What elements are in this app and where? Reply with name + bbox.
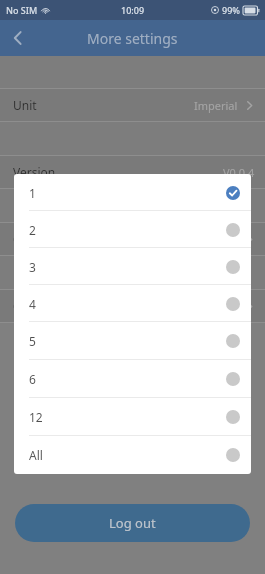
staticText: Clear cache xyxy=(13,231,78,247)
staticText: Check update xyxy=(13,298,91,314)
staticText: Log out xyxy=(109,514,156,532)
button[interactable]: Back xyxy=(0,20,36,56)
staticText: 12 xyxy=(29,409,43,425)
staticText: 99% xyxy=(222,4,240,16)
staticText: V0.0.4 xyxy=(223,165,255,180)
button[interactable]: 1 xyxy=(14,174,251,211)
staticText: All xyxy=(29,447,43,463)
staticText: 3 xyxy=(29,259,36,275)
button[interactable]: Version xyxy=(0,155,265,189)
button[interactable]: Clear cache xyxy=(0,222,265,256)
staticText: 6 xyxy=(29,371,36,387)
staticText: Version xyxy=(13,164,56,180)
staticText: 4 xyxy=(29,296,36,312)
button[interactable]: Check update xyxy=(0,289,265,323)
button[interactable]: 3 xyxy=(14,248,251,285)
button[interactable]: Unit xyxy=(0,88,265,122)
staticText: 2 xyxy=(29,222,36,238)
staticText: No SIM xyxy=(6,4,38,16)
button[interactable]: 5 xyxy=(14,322,251,360)
staticText: 1 xyxy=(29,185,36,201)
button[interactable]: 6 xyxy=(14,360,251,398)
button[interactable]: 4 xyxy=(14,285,251,322)
staticText: Unit xyxy=(13,97,37,113)
staticText: Imperial xyxy=(194,98,238,113)
button[interactable]: 12 xyxy=(14,398,251,436)
button[interactable]: All xyxy=(14,436,251,474)
staticText: 5 xyxy=(29,333,36,349)
button[interactable]: 2 xyxy=(14,211,251,248)
staticText: More settings xyxy=(87,29,178,48)
staticText: 10:09 xyxy=(121,4,145,16)
button[interactable]: Log out xyxy=(15,504,250,542)
